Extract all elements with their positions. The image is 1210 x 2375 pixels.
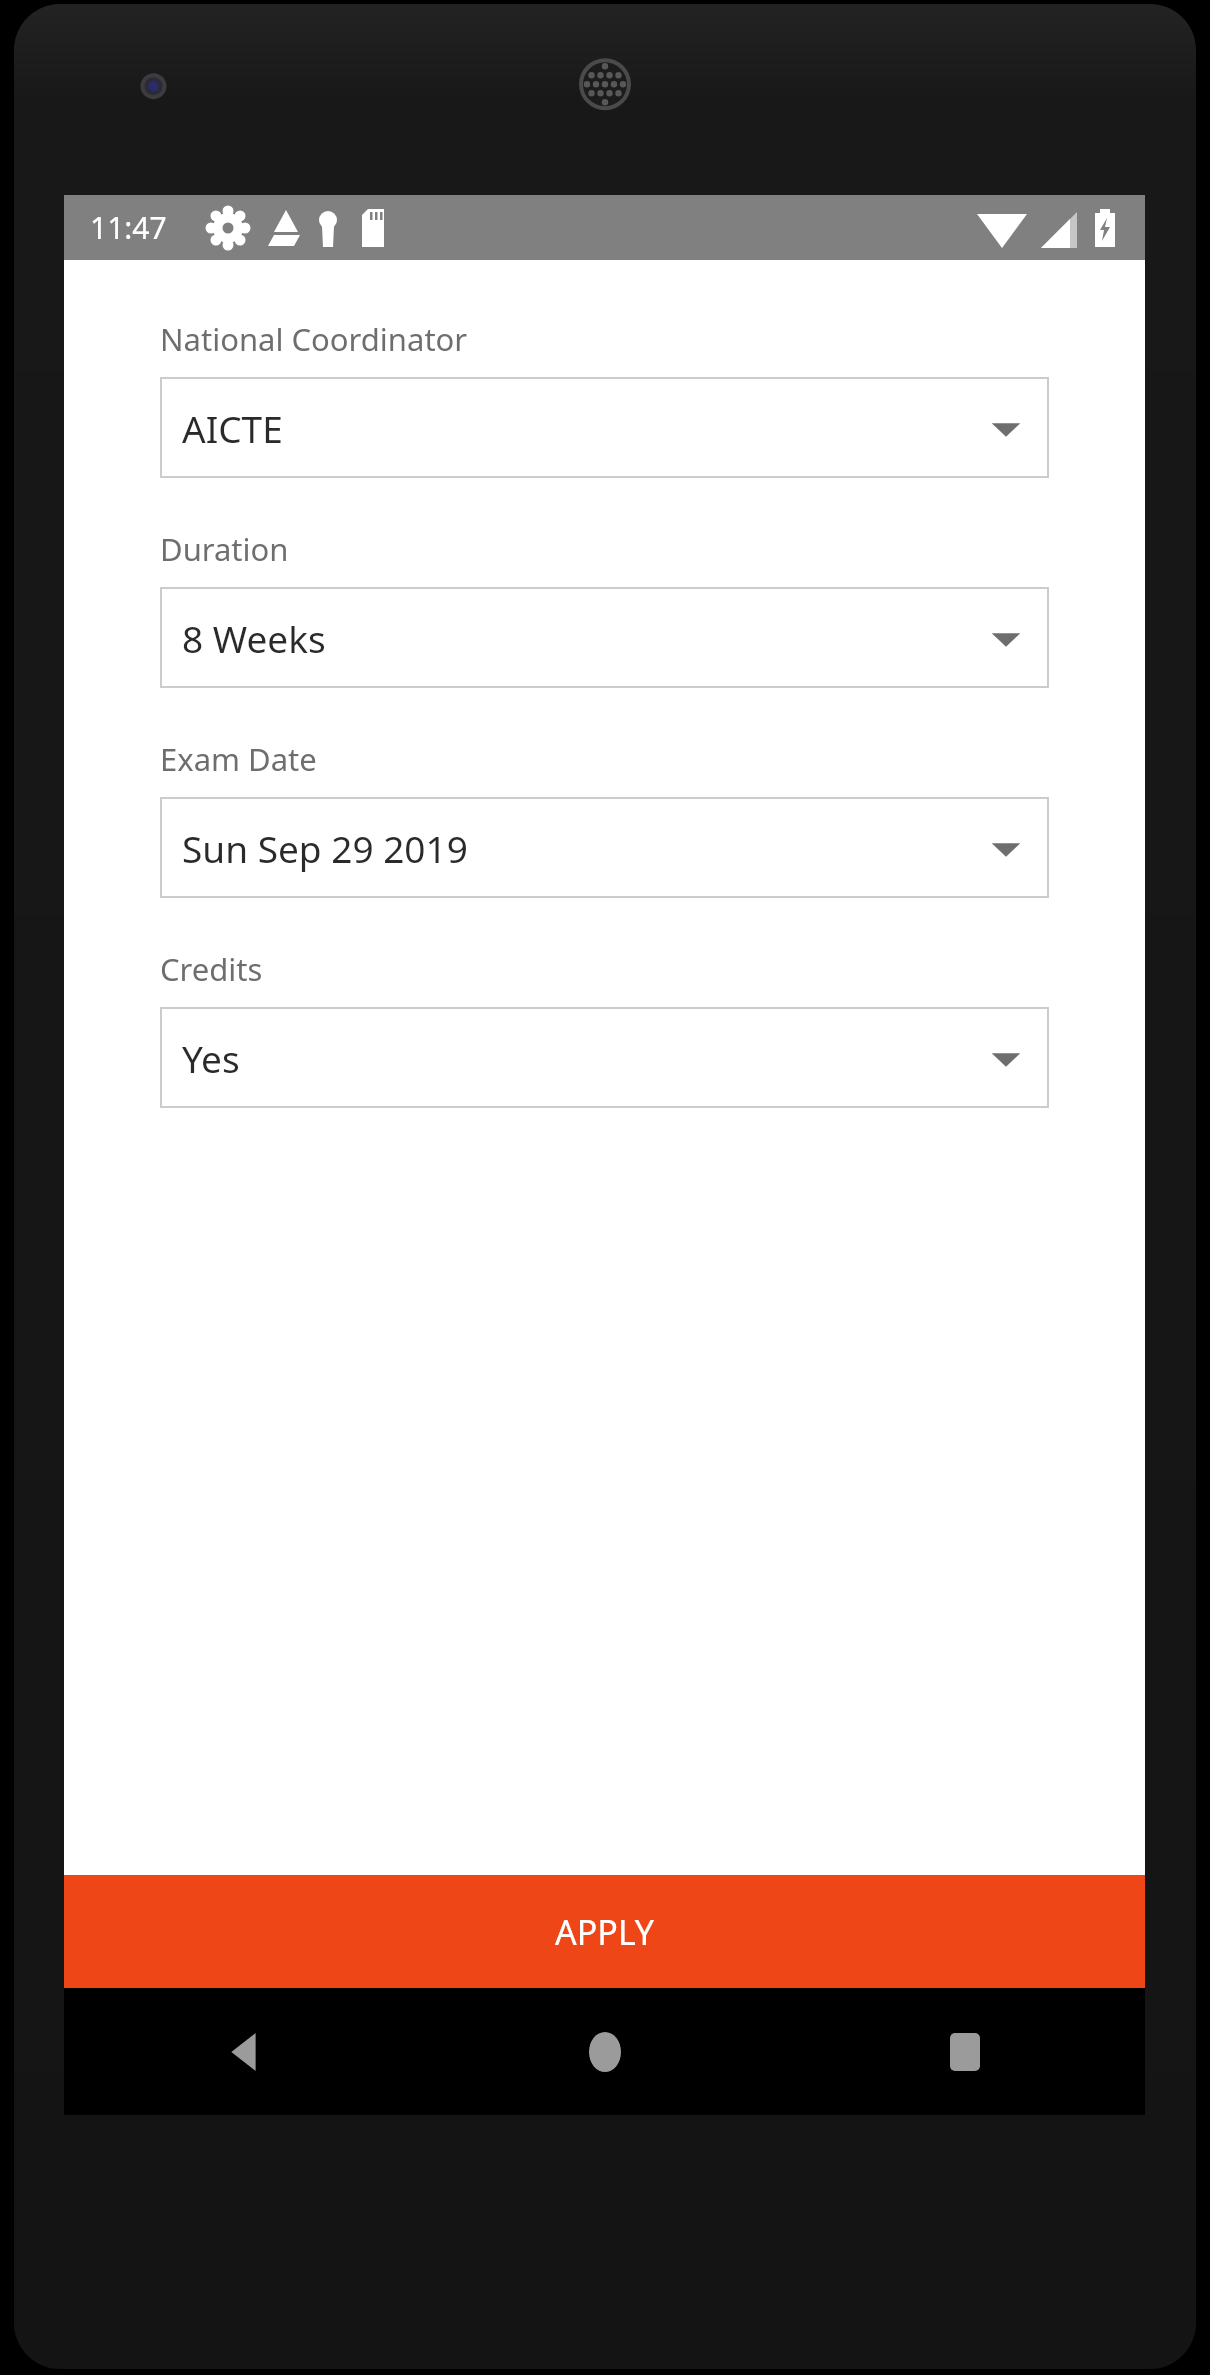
button[interactable]: Home [425, 1988, 785, 2115]
button[interactable]: APPLY [64, 1875, 1145, 1988]
staticText: Exam Date [160, 738, 317, 780]
button[interactable]: Sun Sep 29 2019 [160, 797, 1049, 898]
button[interactable]: Yes [160, 1007, 1049, 1108]
button[interactable]: Recent apps [785, 1988, 1145, 2115]
staticText: AICTE [182, 403, 989, 453]
button[interactable]: 8 Weeks [160, 587, 1049, 688]
staticText: Credits [160, 948, 263, 990]
staticText: Sun Sep 29 2019 [182, 823, 989, 873]
staticText: 11:47 [90, 207, 167, 248]
staticText: APPLY [555, 1909, 654, 1955]
staticText: 8 Weeks [182, 613, 989, 663]
button[interactable]: Back [64, 1988, 425, 2115]
button[interactable]: AICTE [160, 377, 1049, 478]
staticText: Duration [160, 528, 289, 570]
staticText: Yes [182, 1033, 989, 1083]
staticText: National Coordinator [160, 318, 468, 360]
